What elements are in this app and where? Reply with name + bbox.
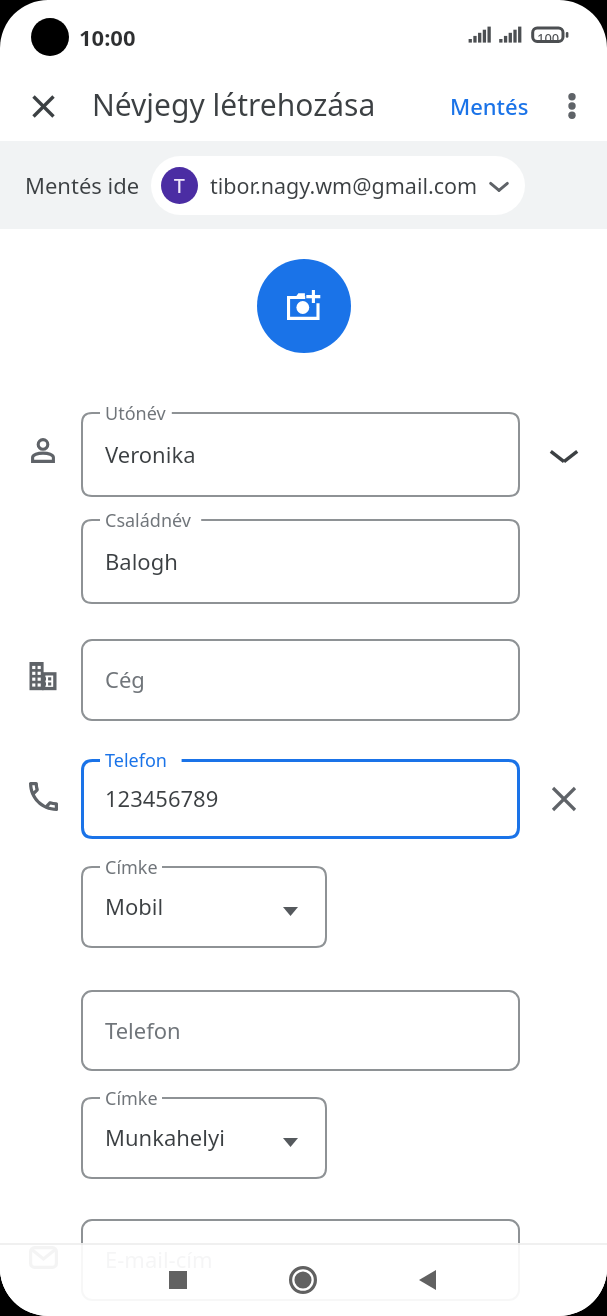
button[interactable]: [21, 428, 65, 472]
staticText: Családnév: [105, 508, 191, 533]
staticText: Veronika: [105, 439, 196, 469]
button[interactable]: Back: [397, 1250, 457, 1310]
staticText: Címke: [105, 1086, 158, 1111]
staticText: tibor.nagy.wm@gmail.com: [210, 171, 478, 200]
button[interactable]: T: [151, 156, 525, 215]
button[interactable]: Close: [19, 82, 67, 130]
staticText: Munkahelyi: [105, 1122, 225, 1152]
staticText: 100: [537, 29, 560, 47]
button[interactable]: [21, 774, 65, 818]
staticText: Utónév: [105, 401, 166, 426]
button[interactable]: Expand name fields: [542, 433, 586, 477]
button[interactable]: More options: [548, 82, 596, 130]
staticText: Mobil: [105, 891, 164, 921]
staticText: Balogh: [105, 546, 178, 576]
staticText: Telefon: [105, 1015, 181, 1045]
staticText: 123456789: [105, 783, 219, 813]
staticText: 10:00: [79, 22, 136, 52]
staticText: E-mail-cím: [105, 1244, 213, 1274]
staticText: Telefon: [105, 748, 167, 773]
button[interactable]: Recent apps: [148, 1250, 208, 1310]
button[interactable]: Add photo: [257, 259, 351, 353]
button[interactable]: Home: [273, 1250, 333, 1310]
button[interactable]: [21, 1235, 65, 1279]
button[interactable]: [21, 655, 65, 699]
button[interactable]: Clear phone number: [542, 777, 586, 821]
staticText: Mentés: [450, 91, 529, 121]
staticText: Névjegy létrehozása: [92, 84, 376, 125]
staticText: Címke: [105, 855, 158, 880]
staticText: T: [174, 173, 185, 199]
staticText: Cég: [105, 664, 145, 694]
button[interactable]: Mentés: [442, 85, 537, 127]
staticText: Mentés ide: [25, 170, 140, 200]
